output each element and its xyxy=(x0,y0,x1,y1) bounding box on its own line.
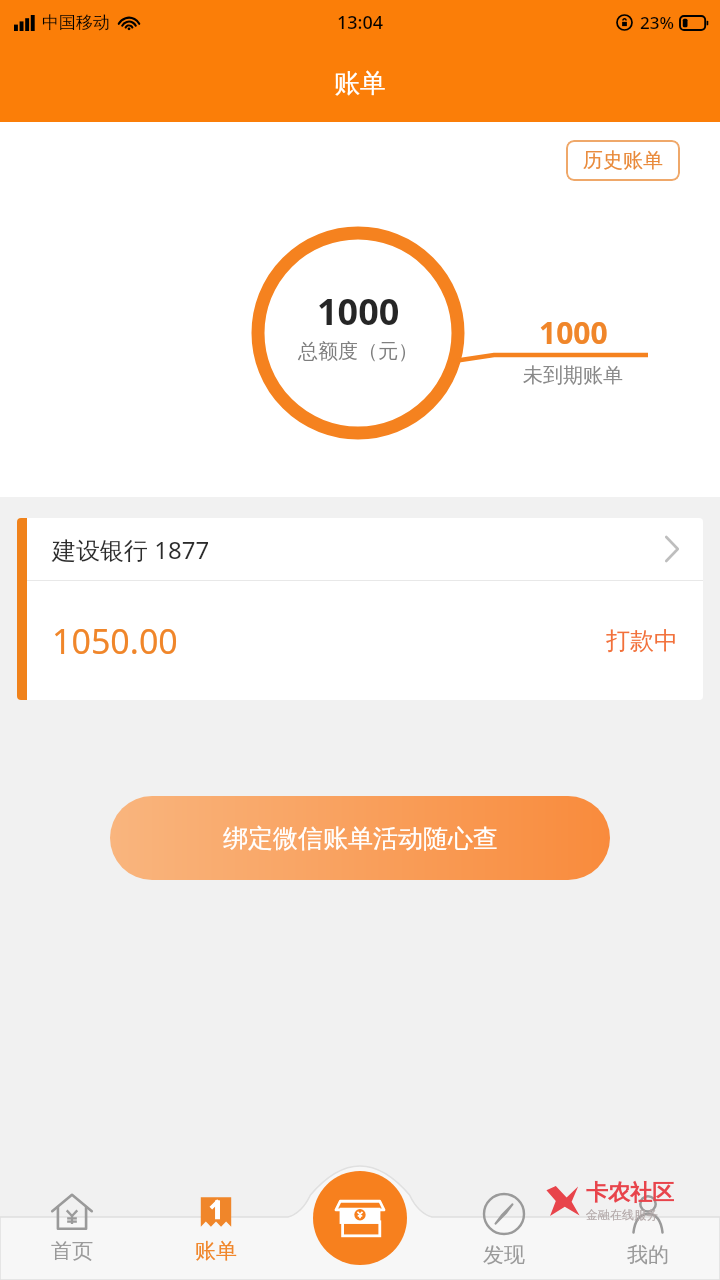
button[interactable]: 账单 xyxy=(144,1180,288,1280)
staticText: 打款中 xyxy=(606,626,678,656)
staticText: 绑定微信账单活动随心查 xyxy=(223,823,498,854)
staticText: 卡农社区 xyxy=(586,1179,674,1207)
staticText: 总额度（元） xyxy=(298,339,418,364)
staticText: 13:04 xyxy=(337,10,384,35)
staticText: 账单 xyxy=(195,1238,237,1264)
staticText: 金融在线服务 xyxy=(586,1207,658,1222)
staticText: 1000 xyxy=(317,287,400,336)
staticText: 未到期账单 xyxy=(523,363,623,388)
staticText: 首页 xyxy=(51,1238,93,1264)
staticText: 建设银行 1877 xyxy=(52,533,210,566)
staticText: 1050.00 xyxy=(52,618,178,664)
button[interactable]: 建设银行 1877 xyxy=(17,518,703,700)
staticText: 我的 xyxy=(627,1242,669,1268)
staticText: 发现 xyxy=(483,1242,525,1268)
button[interactable]: 绑定微信账单活动随心查 xyxy=(110,796,610,880)
button[interactable]: 历史账单 xyxy=(566,140,680,181)
staticText: 账单 xyxy=(334,67,386,100)
button[interactable]: 发现 xyxy=(432,1180,576,1280)
staticText: 历史账单 xyxy=(583,148,663,173)
staticText: 23% xyxy=(640,11,674,34)
button[interactable]: Withdraw cash xyxy=(313,1171,407,1265)
button[interactable]: 我的 xyxy=(576,1180,720,1280)
staticText: 1000 xyxy=(539,312,608,353)
staticText: 中国移动 xyxy=(42,12,110,33)
button[interactable]: 首页 xyxy=(0,1180,144,1280)
